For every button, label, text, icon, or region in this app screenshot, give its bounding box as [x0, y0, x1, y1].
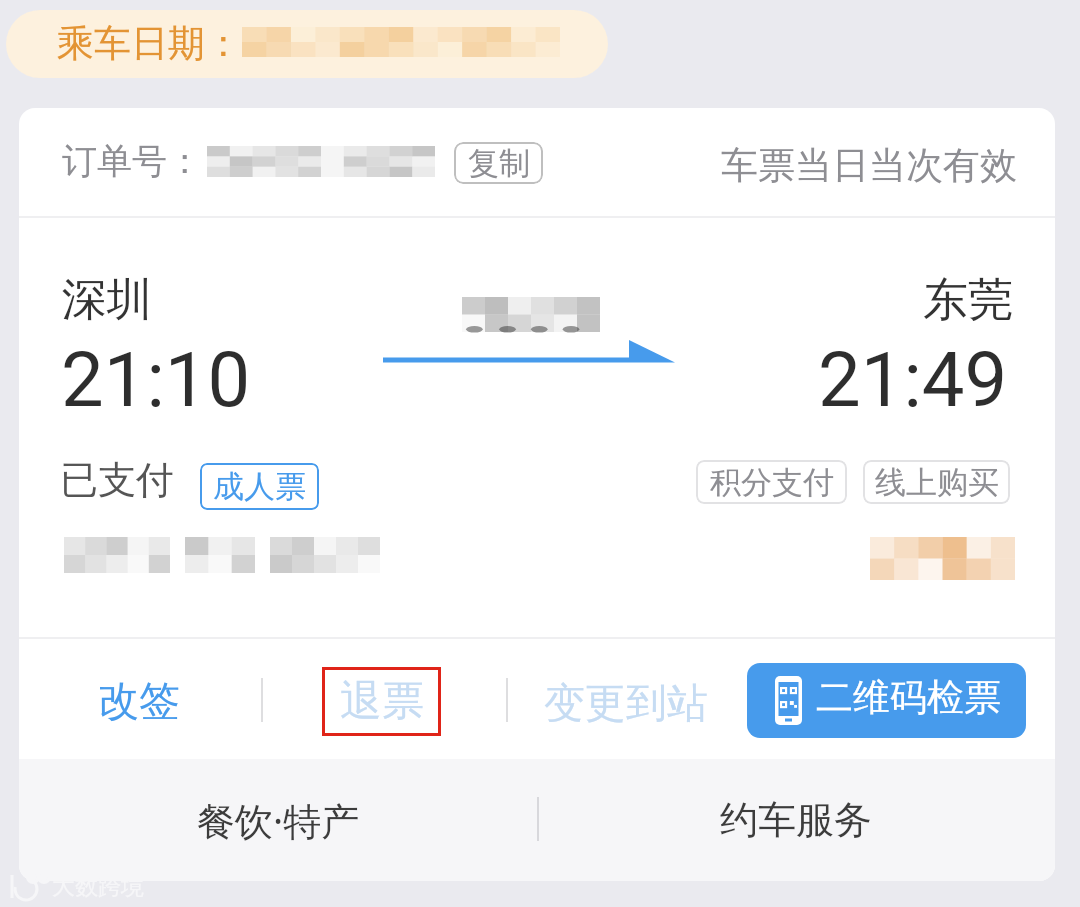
staticText: 二维码检票 — [816, 674, 1001, 721]
button[interactable]: 积分支付 — [696, 460, 847, 504]
staticText: 21:10 — [61, 335, 251, 424]
staticText: 订单号： — [62, 139, 202, 183]
staticText: 改签 — [98, 676, 180, 728]
staticText: 东莞 — [923, 272, 1013, 329]
button[interactable]: 餐饮·特产 — [19, 759, 537, 881]
staticText: 成人票 — [213, 467, 306, 506]
staticText: 退票 — [340, 675, 424, 728]
staticText: 复制 — [468, 144, 530, 183]
staticText: 变更到站 — [544, 678, 708, 730]
button[interactable]: 乘车日期： — [6, 10, 608, 78]
staticText: 乘车日期： — [57, 20, 242, 67]
staticText: 线上购买 — [875, 463, 999, 502]
button[interactable]: 变更到站 — [541, 676, 711, 732]
staticText: 约车服务 — [720, 796, 872, 844]
staticText: 积分支付 — [710, 463, 834, 502]
button[interactable]: 约车服务 — [537, 759, 1055, 881]
button[interactable]: 成人票 — [200, 463, 319, 510]
button[interactable]: 二维码检票 — [747, 663, 1026, 738]
staticText: 深圳 — [62, 272, 152, 329]
button[interactable]: 改签 — [94, 674, 184, 730]
staticText: 餐饮·特产 — [197, 794, 360, 846]
button[interactable]: 退票 — [322, 667, 441, 736]
button[interactable]: 线上购买 — [863, 460, 1010, 504]
staticText: 21:49 — [818, 335, 1008, 424]
button[interactable]: 复制 — [454, 142, 543, 184]
other: 二维码检票 — [775, 676, 802, 725]
staticText: 已支付 — [60, 456, 174, 504]
staticText: 大数跨境 — [52, 872, 144, 901]
staticText: 车票当日当次有效 — [721, 142, 1017, 189]
